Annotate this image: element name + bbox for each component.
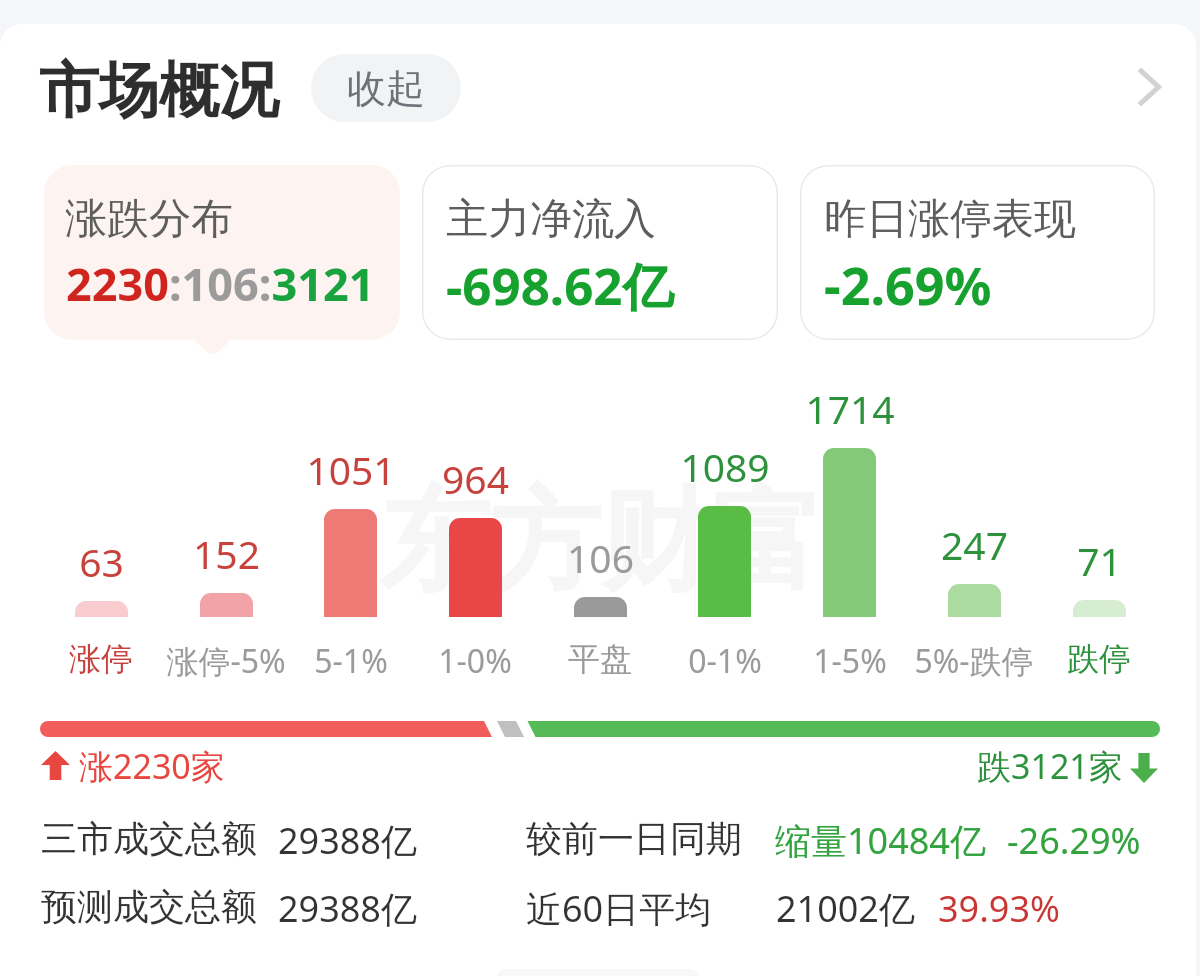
button[interactable]: 5%-跌停 247 [914, 404, 1034, 679]
button[interactable]: 0-1% 1089 [665, 404, 785, 679]
button[interactable]: 涨停-5% 152 [166, 404, 286, 679]
staticText: 缩量10484亿 [775, 816, 986, 865]
staticText: 东方财富 [379, 472, 823, 612]
staticText: 1-0% [438, 639, 512, 683]
staticText: 21002亿 [776, 884, 915, 933]
button[interactable]: 市场概况 [36, 48, 288, 128]
staticText: -2.69% [824, 249, 992, 320]
staticText: 1-5% [813, 639, 887, 683]
staticText: 2230:106:3121 [66, 253, 375, 314]
staticText: 昨日涨停表现 [824, 193, 1076, 246]
staticText: 29388亿 [278, 816, 417, 865]
button[interactable]: Open market overview [1113, 51, 1185, 123]
staticText: -698.62亿 [446, 250, 674, 320]
staticText: 5-1% [314, 639, 388, 683]
button[interactable]: 涨2230家 [38, 743, 238, 787]
staticText: 152 [193, 527, 260, 580]
staticText: 涨2230家 [79, 743, 225, 787]
staticText: 0-1% [688, 639, 762, 683]
button[interactable]: 昨日涨停表现 [800, 165, 1155, 340]
staticText: 1089 [680, 440, 770, 493]
staticText: 1051 [306, 443, 396, 496]
staticText: 964 [442, 452, 509, 505]
button[interactable]: 主力净流入 [422, 165, 778, 340]
button[interactable]: 5-1% 1051 [291, 404, 411, 679]
staticText: 主力净流入 [446, 193, 656, 246]
staticText: 247 [941, 518, 1008, 571]
staticText: 近60日平均 [526, 884, 712, 933]
staticText: 预测成交总额 [41, 884, 257, 929]
button[interactable]: 涨停 63 [41, 404, 161, 679]
staticText: 三市成交总额 [41, 816, 257, 861]
button[interactable]: 跌停 71 [1039, 404, 1159, 679]
staticText: 39.93% [938, 884, 1060, 933]
staticText: 较前一日同期 [526, 816, 742, 861]
button[interactable]: 1-5% 1714 [790, 404, 910, 679]
staticText: 收起 [347, 64, 425, 113]
staticText: 涨跌分布 [65, 193, 233, 246]
staticText: 71 [1077, 534, 1122, 587]
staticText: -26.29% [1007, 816, 1141, 865]
button[interactable]: 1-0% 964 [415, 404, 535, 679]
button[interactable]: 涨跌分布 [44, 165, 400, 340]
staticText: 106 [567, 531, 634, 584]
staticText: 涨停 [69, 639, 133, 679]
staticText: 5%-跌停 [914, 639, 1034, 683]
staticText: 涨停-5% [166, 639, 286, 683]
staticText: 29388亿 [278, 884, 417, 933]
staticText: 跌停 [1067, 639, 1131, 679]
button[interactable]: 平盘 106 [540, 404, 660, 679]
staticText: 跌3121家 [977, 743, 1123, 789]
staticText: 市场概况 [39, 53, 279, 129]
button[interactable]: 收起 [311, 54, 461, 122]
staticText: 63 [79, 535, 124, 588]
staticText: 1714 [805, 382, 895, 435]
staticText: 平盘 [568, 639, 632, 679]
